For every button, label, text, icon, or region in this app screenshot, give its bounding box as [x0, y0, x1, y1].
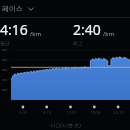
staticText: 23:19 [113, 110, 124, 115]
button[interactable]: 페이스 [0, 0, 130, 17]
staticText: 4:16 [0, 20, 28, 39]
staticText: 평균 [0, 40, 10, 46]
button[interactable]: 4:16 [0, 18, 65, 46]
button[interactable] [0, 46, 130, 104]
staticText: 5:00 [19, 110, 27, 115]
staticText: 페이스 [2, 4, 23, 13]
staticText: 18:38 [90, 110, 101, 115]
staticText: 2:40 [73, 20, 101, 39]
other: Change metric [26, 4, 35, 13]
staticText: 6:15 [43, 110, 51, 115]
staticText: /km [103, 30, 115, 38]
staticText: 12:29 [66, 110, 77, 115]
staticText: /km [30, 30, 42, 38]
staticText: 최고 [73, 40, 83, 46]
staticText: 시간(시:분:초) [50, 122, 81, 129]
button[interactable]: 2:40 [65, 18, 130, 46]
